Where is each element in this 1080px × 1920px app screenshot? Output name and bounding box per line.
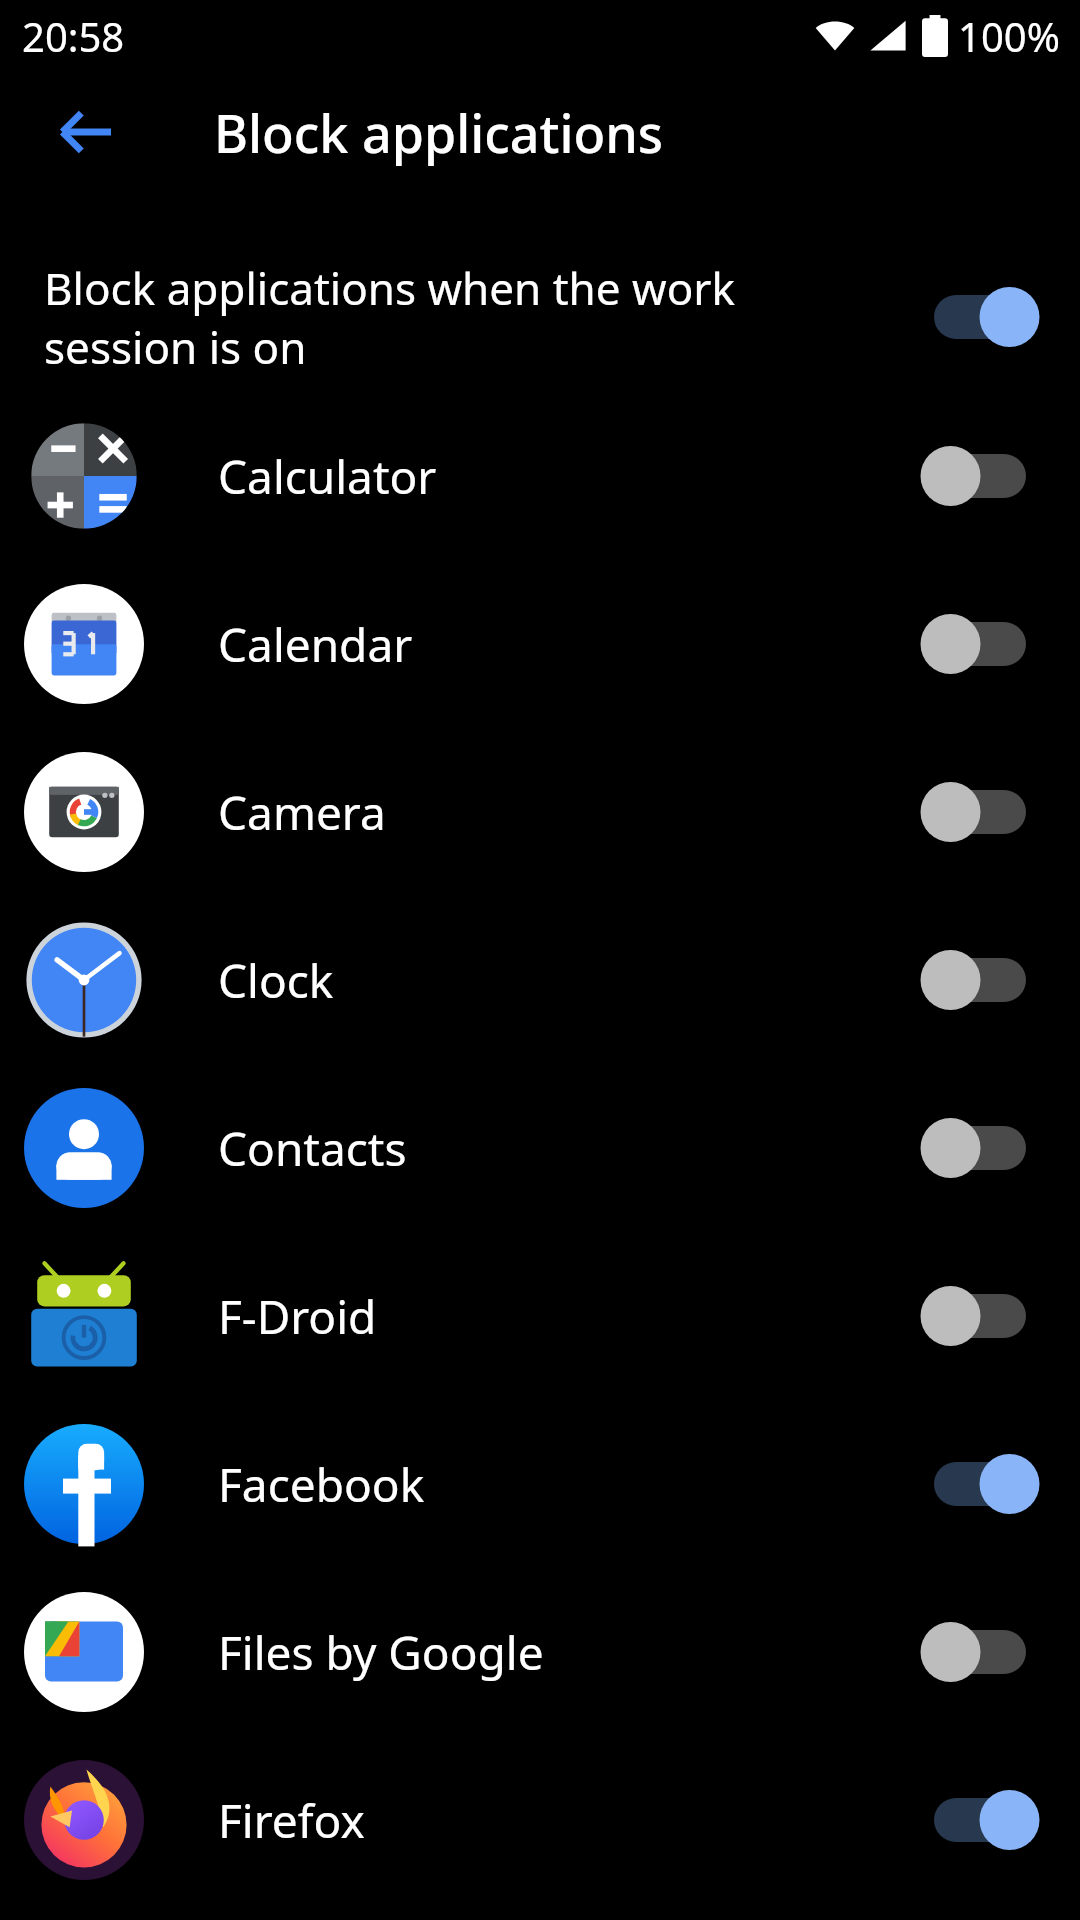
staticText: Block applications (214, 97, 664, 168)
staticText: F-Droid (218, 1285, 920, 1348)
staticText: Calculator (218, 445, 920, 508)
button[interactable]: Off (920, 608, 1040, 680)
staticText: Firefox (218, 1789, 920, 1852)
button[interactable]: Facebook (0, 1400, 1080, 1568)
button[interactable]: Off (920, 440, 1040, 512)
button[interactable]: Off (920, 776, 1040, 848)
staticText: 100% (958, 9, 1060, 63)
button[interactable]: Block applications when the work session… (0, 258, 1080, 376)
staticText: Facebook (218, 1453, 920, 1516)
button[interactable]: Files by Google (0, 1568, 1080, 1736)
button[interactable]: Calendar (0, 560, 1080, 728)
staticText: Contacts (218, 1117, 920, 1180)
staticText: Files by Google (218, 1621, 920, 1684)
button[interactable]: On (920, 1784, 1040, 1856)
button[interactable]: Clock (0, 896, 1080, 1064)
button[interactable]: Off (920, 1616, 1040, 1688)
staticText: 20:58 (22, 9, 125, 63)
button[interactable]: On (920, 281, 1040, 353)
button[interactable]: Contacts (0, 1064, 1080, 1232)
button[interactable]: Back (34, 82, 134, 182)
button[interactable]: Calculator (0, 392, 1080, 560)
button[interactable]: On (920, 1448, 1040, 1520)
button[interactable]: Off (920, 944, 1040, 1016)
button[interactable]: Firefox (0, 1736, 1080, 1904)
button[interactable]: Camera (0, 728, 1080, 896)
staticText: Calendar (218, 613, 920, 676)
staticText: Clock (218, 949, 920, 1012)
staticText: Block applications when the work session… (44, 258, 880, 376)
button[interactable]: F-Droid (0, 1232, 1080, 1400)
button[interactable]: Off (920, 1280, 1040, 1352)
button[interactable]: Off (920, 1112, 1040, 1184)
staticText: Camera (218, 781, 920, 844)
